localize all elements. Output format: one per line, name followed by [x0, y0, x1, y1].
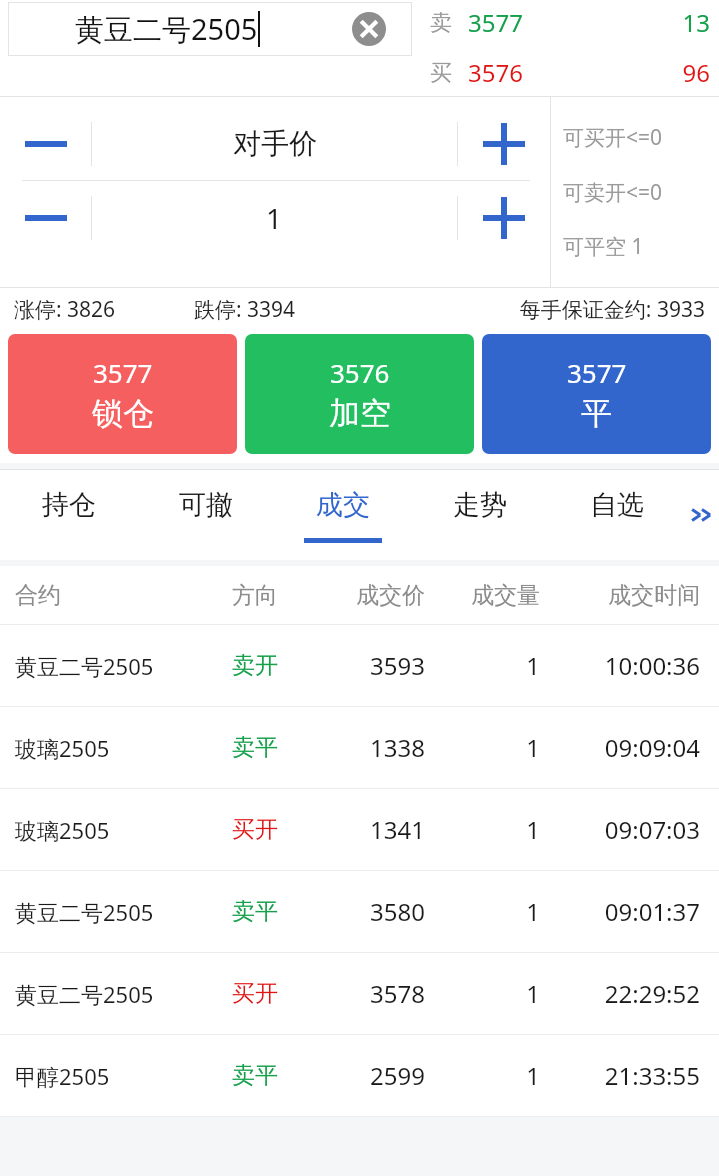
staticText: 买: [430, 59, 468, 87]
staticText: 持仓: [42, 488, 96, 522]
staticText: 卖平: [210, 733, 300, 762]
staticText: 1: [425, 731, 540, 764]
staticText: 成交时间: [540, 581, 700, 610]
staticText: 1: [425, 977, 540, 1010]
staticText: 成交量: [425, 581, 540, 610]
staticText: 加空: [329, 394, 391, 433]
button[interactable]: 黄豆二号2505: [0, 625, 719, 707]
button[interactable]: 3577: [8, 334, 237, 454]
button[interactable]: Clear: [326, 2, 412, 56]
staticText: 成交价: [300, 581, 425, 610]
button[interactable]: 黄豆二号2505: [8, 2, 412, 56]
staticText: 13: [598, 6, 710, 39]
staticText: 10:00:36: [540, 649, 700, 682]
staticText: 3577: [93, 355, 153, 390]
staticText: 对手价: [233, 126, 317, 161]
staticText: 玻璃2505: [15, 815, 210, 845]
button[interactable]: 3576: [245, 334, 474, 454]
staticText: 卖平: [210, 897, 300, 926]
button[interactable]: Increase: [458, 181, 550, 254]
staticText: 1338: [300, 731, 425, 764]
staticText: 1: [266, 199, 283, 237]
staticText: 3576: [468, 56, 598, 89]
staticText: 1: [425, 1059, 540, 1092]
button[interactable]: 黄豆二号2505: [0, 953, 719, 1035]
staticText: 黄豆二号2505: [75, 9, 258, 49]
staticText: 09:09:04: [540, 731, 700, 764]
staticText: 3577: [567, 355, 627, 390]
staticText: 黄豆二号2505: [15, 651, 210, 681]
button[interactable]: Decrease: [0, 181, 91, 254]
staticText: 黄豆二号2505: [15, 897, 210, 927]
button[interactable]: 可撤: [137, 470, 274, 560]
staticText: 平: [581, 394, 612, 433]
staticText: 买开: [210, 979, 300, 1008]
staticText: 3576: [330, 355, 390, 390]
staticText: 锁仓: [92, 394, 154, 433]
staticText: 买开: [210, 815, 300, 844]
staticText: 玻璃2505: [15, 733, 210, 763]
staticText: 卖开: [210, 651, 300, 680]
button[interactable]: Decrease: [0, 107, 91, 180]
staticText: 合约: [15, 581, 210, 610]
button[interactable]: Increase: [458, 107, 550, 180]
staticText: 成交: [316, 488, 370, 522]
button[interactable]: 甲醇2505: [0, 1035, 719, 1117]
staticText: 1: [425, 649, 540, 682]
staticText: 跌停: 3394: [194, 295, 394, 324]
staticText: 甲醇2505: [15, 1061, 210, 1091]
staticText: 96: [598, 56, 710, 89]
button[interactable]: 1: [92, 181, 457, 254]
staticText: 09:01:37: [540, 895, 700, 928]
staticText: 自选: [590, 488, 644, 522]
staticText: 09:07:03: [540, 813, 700, 846]
button[interactable]: 持仓: [0, 470, 137, 560]
staticText: 2599: [300, 1059, 425, 1092]
staticText: 卖: [430, 9, 468, 37]
button[interactable]: 走势: [411, 470, 548, 560]
button[interactable]: More tabs: [685, 470, 719, 560]
button[interactable]: 3577: [482, 334, 711, 454]
staticText: 21:33:55: [540, 1059, 700, 1092]
staticText: 黄豆二号2505: [15, 979, 210, 1009]
staticText: 可撤: [179, 488, 233, 522]
staticText: 3578: [300, 977, 425, 1010]
staticText: 3580: [300, 895, 425, 928]
staticText: 卖平: [210, 1061, 300, 1090]
staticText: 3593: [300, 649, 425, 682]
button[interactable]: 玻璃2505: [0, 707, 719, 789]
staticText: 1: [425, 895, 540, 928]
button[interactable]: 黄豆二号2505: [0, 871, 719, 953]
button[interactable]: 成交: [274, 470, 411, 560]
staticText: 涨停: 3826: [14, 295, 194, 324]
staticText: 1: [425, 813, 540, 846]
staticText: 可平空 1: [563, 232, 644, 261]
button[interactable]: 玻璃2505: [0, 789, 719, 871]
staticText: 可卖开<=0: [563, 178, 663, 207]
staticText: 方向: [210, 581, 300, 610]
staticText: 走势: [453, 488, 507, 522]
staticText: 22:29:52: [540, 977, 700, 1010]
staticText: 每手保证金约: 3933: [394, 295, 705, 324]
staticText: 可买开<=0: [563, 123, 663, 152]
button[interactable]: 对手价: [92, 107, 457, 180]
staticText: 1341: [300, 813, 425, 846]
button[interactable]: 自选: [548, 470, 685, 560]
staticText: 3577: [468, 6, 598, 39]
